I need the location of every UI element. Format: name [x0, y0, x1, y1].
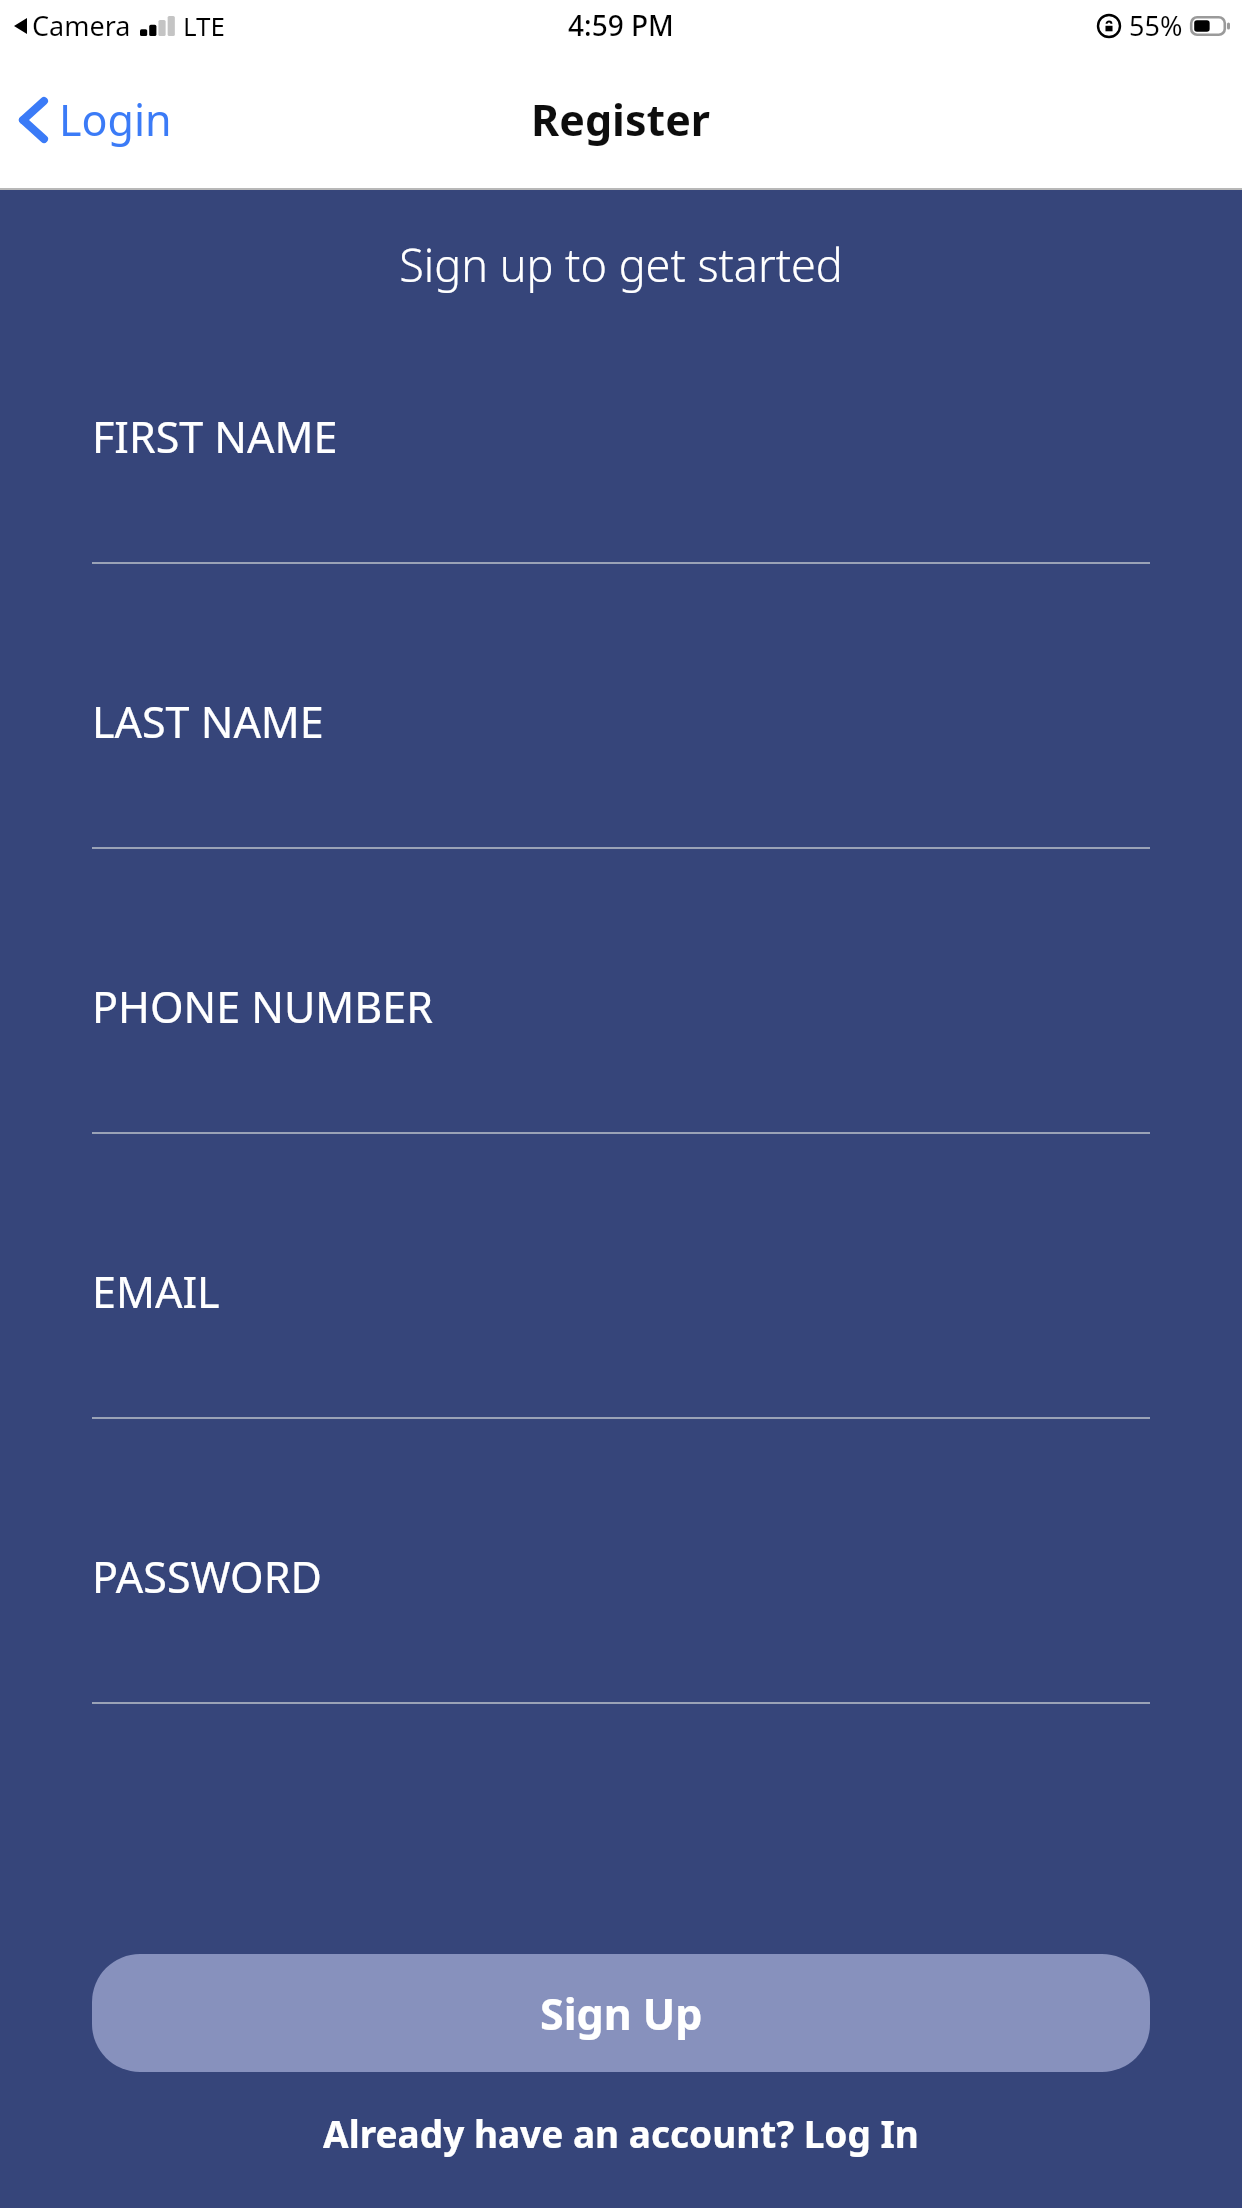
staticText: PHONE NUMBER — [92, 977, 433, 1036]
staticText: Login — [59, 90, 172, 149]
button[interactable]: Sign Up — [92, 1954, 1150, 2072]
staticText: EMAIL — [92, 1262, 220, 1321]
button[interactable]: Already have an account? Log In — [0, 2108, 1242, 2158]
staticText: LAST NAME — [92, 692, 324, 751]
staticText: Sign Up — [540, 1984, 703, 2043]
button[interactable]: FIRST NAME — [0, 407, 1242, 692]
button[interactable]: LAST NAME — [0, 692, 1242, 977]
staticText: 55% — [1129, 7, 1183, 44]
other: Back — [18, 95, 48, 145]
button[interactable]: Back — [0, 78, 190, 161]
button[interactable]: PASSWORD — [0, 1547, 1242, 1832]
staticText: Camera — [32, 7, 131, 44]
button[interactable]: PHONE NUMBER — [0, 977, 1242, 1262]
button[interactable]: EMAIL — [0, 1262, 1242, 1547]
staticText: LTE — [183, 8, 226, 43]
staticText: FIRST NAME — [92, 407, 338, 466]
staticText: Sign up to get started — [0, 234, 1242, 295]
staticText: PASSWORD — [92, 1547, 322, 1606]
staticText: Register — [531, 90, 711, 149]
staticText: Already have an account? Log In — [323, 2108, 919, 2158]
staticText: 4:59 PM — [568, 6, 674, 44]
